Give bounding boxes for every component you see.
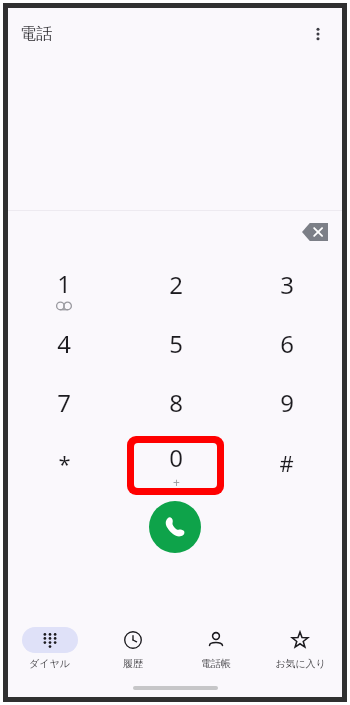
staticText: 5	[169, 327, 183, 360]
staticText: 6	[280, 327, 294, 360]
staticText: 1	[57, 267, 71, 300]
button[interactable]: 4	[8, 318, 120, 377]
button[interactable]: 5	[120, 318, 231, 377]
button[interactable]: ダイヤル	[8, 617, 91, 679]
button[interactable]: 3	[231, 259, 342, 318]
staticText: 8	[169, 386, 183, 419]
button[interactable]: 9	[231, 377, 342, 436]
button[interactable]: More options	[302, 18, 334, 50]
staticText: +	[173, 474, 180, 490]
staticText: 電話	[20, 24, 52, 44]
staticText: 電話帳	[201, 657, 231, 670]
button[interactable]: 0	[120, 436, 231, 495]
button[interactable]: 7	[8, 377, 120, 436]
button[interactable]: 1	[8, 259, 120, 318]
staticText: #	[279, 448, 294, 478]
button[interactable]: 履歴	[91, 617, 174, 679]
staticText: お気に入り	[275, 657, 326, 670]
button[interactable]: #	[231, 436, 342, 495]
staticText: 3	[280, 268, 294, 301]
staticText: ダイヤル	[29, 657, 70, 670]
button[interactable]: Backspace	[298, 215, 332, 249]
staticText: 2	[169, 268, 183, 301]
button[interactable]: 2	[120, 259, 231, 318]
button[interactable]: 8	[120, 377, 231, 436]
staticText: 9	[280, 386, 294, 419]
button[interactable]: 電話帳	[174, 617, 258, 679]
staticText: 4	[57, 327, 71, 360]
staticText: *	[58, 448, 71, 478]
button[interactable]: *	[8, 436, 120, 495]
staticText: 7	[57, 386, 71, 419]
staticText: 0	[169, 441, 183, 474]
button[interactable]: Call	[149, 501, 201, 553]
button[interactable]: 6	[231, 318, 342, 377]
button[interactable]: お気に入り	[258, 617, 342, 679]
staticText: 履歴	[123, 657, 143, 670]
